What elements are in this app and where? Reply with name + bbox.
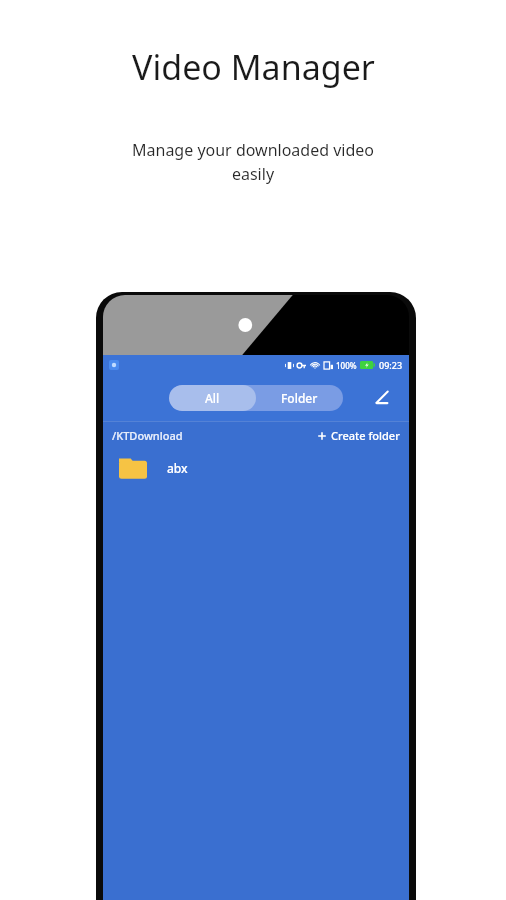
staticText: Video Manager (132, 44, 375, 90)
button[interactable]: Create folder (317, 428, 400, 443)
staticText: Manage your downloaded video easily (132, 139, 374, 185)
staticText: All (205, 390, 220, 406)
staticText: /KTDownload (112, 428, 183, 443)
staticText: 09:23 (379, 359, 403, 371)
staticText: Folder (281, 390, 318, 406)
staticText: 100% (336, 360, 357, 371)
staticText: abx (167, 460, 188, 476)
button[interactable]: Edit (369, 385, 395, 411)
button[interactable]: Folder (256, 385, 343, 411)
staticText: Create folder (331, 428, 400, 443)
button[interactable]: All (169, 385, 256, 411)
button[interactable]: abx (119, 448, 409, 488)
